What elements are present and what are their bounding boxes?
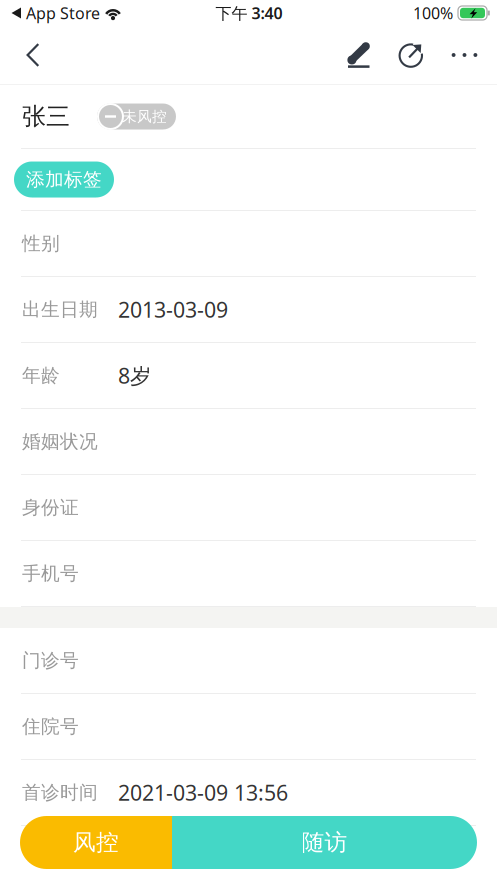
button[interactable]: Back: [9, 26, 57, 84]
staticText: 2021-03-09 13:56: [118, 778, 288, 807]
button[interactable]: Share: [385, 26, 438, 84]
staticText: 风控: [73, 829, 119, 856]
staticText: App Store: [26, 2, 100, 24]
staticText: 下午 3:40: [215, 2, 282, 24]
button[interactable]: 添加标签: [14, 161, 114, 197]
staticText: 添加标签: [26, 168, 102, 191]
staticText: 手机号: [22, 562, 79, 585]
staticText: 2013-03-09: [118, 295, 228, 324]
staticText: 出生日期: [22, 298, 98, 321]
button[interactable]: 随访: [172, 816, 477, 869]
staticText: 100%: [413, 2, 453, 24]
staticText: 首诊时间: [22, 781, 98, 804]
staticText: 8岁: [118, 361, 151, 390]
staticText: 住院号: [22, 715, 79, 738]
staticText: 身份证: [22, 496, 79, 519]
button[interactable]: Edit: [332, 26, 385, 84]
staticText: 张三: [22, 102, 70, 131]
staticText: 婚姻状况: [22, 430, 98, 453]
staticText: 年龄: [22, 364, 60, 387]
staticText: 随访: [301, 829, 347, 856]
button[interactable]: 风控: [20, 816, 172, 869]
staticText: 门诊号: [22, 649, 79, 672]
staticText: 性别: [22, 232, 60, 255]
button[interactable]: More: [438, 26, 491, 84]
staticText: 未风控: [122, 107, 167, 125]
